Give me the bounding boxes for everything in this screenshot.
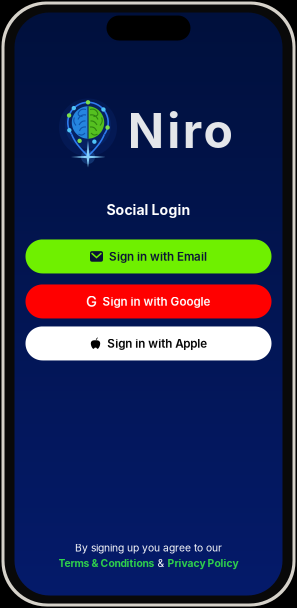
button[interactable]: Privacy Policy [167, 557, 238, 569]
button[interactable]: Sign in with Email [25, 239, 271, 273]
staticText: & [157, 557, 164, 569]
staticText: G [86, 293, 97, 310]
staticText: Social Login [106, 201, 190, 218]
button[interactable]: Terms & Conditions [58, 557, 154, 569]
staticText: Privacy Policy [167, 557, 238, 569]
staticText: By signing up you agree to our [75, 542, 222, 554]
staticText: Sign in with Apple [107, 336, 207, 350]
button[interactable]: Sign in with Apple [25, 326, 271, 360]
button[interactable]: G [25, 284, 271, 318]
staticText: Niro [128, 101, 232, 160]
staticText: Sign in with Google [102, 294, 210, 308]
staticText: Terms & Conditions [58, 557, 154, 569]
staticText: Sign in with Email [109, 249, 207, 263]
